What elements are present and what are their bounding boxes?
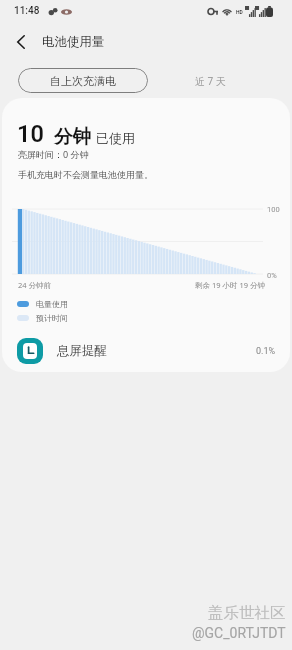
- button[interactable]: Back: [10, 31, 32, 53]
- staticText: 电量使用: [36, 299, 68, 309]
- staticText: 剩余 19 小时 19 分钟: [195, 280, 265, 290]
- staticText: HD: [236, 9, 243, 15]
- staticText: 24 分钟前: [18, 280, 52, 290]
- button[interactable]: 近 7 天: [148, 68, 245, 93]
- staticText: 0%: [267, 271, 277, 280]
- button[interactable]: 息屏提醒: [2, 334, 290, 368]
- staticText: 0.1%: [256, 346, 276, 357]
- staticText: 100: [267, 205, 280, 214]
- staticText: 已使用: [96, 130, 135, 146]
- staticText: 息屏提醒: [57, 343, 107, 359]
- staticText: 分钟: [54, 125, 91, 148]
- button[interactable]: 自上次充满电: [18, 68, 148, 93]
- staticText: 10: [17, 120, 44, 148]
- staticText: @GC_0RTJTDT: [192, 625, 286, 641]
- staticText: 盖乐世社区: [208, 603, 286, 623]
- staticText: 预计时间: [36, 313, 68, 323]
- staticText: 电池使用量: [42, 34, 105, 50]
- staticText: 近 7 天: [195, 74, 226, 88]
- staticText: 自上次充满电: [50, 74, 116, 88]
- staticText: 11:48: [14, 5, 40, 17]
- staticText: 亮屏时间：0 分钟: [18, 148, 89, 160]
- staticText: 手机充电时不会测量电池使用量。: [18, 169, 153, 180]
